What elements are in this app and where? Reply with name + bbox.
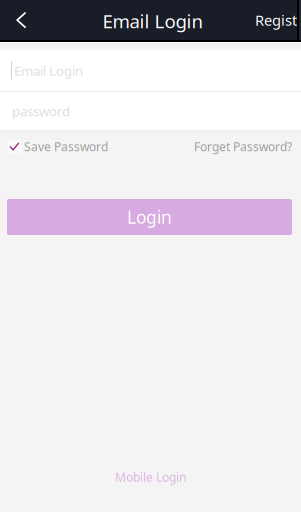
staticText: Email Login — [102, 9, 203, 33]
staticText: Register — [255, 10, 301, 30]
staticText: Email Login — [14, 62, 83, 79]
button[interactable]: Login — [7, 199, 292, 235]
button[interactable]: Email Login — [0, 50, 301, 91]
button[interactable]: Forget Password? — [194, 131, 292, 162]
button[interactable]: Register — [255, 0, 301, 40]
staticText: password — [12, 102, 70, 120]
staticText: Save Password — [24, 138, 108, 154]
staticText: Login — [127, 205, 172, 228]
button[interactable]: password — [0, 92, 301, 130]
staticText: Forget Password? — [194, 138, 292, 154]
staticText: Mobile Login — [115, 469, 186, 485]
button[interactable]: Save Password — [8, 131, 108, 162]
button[interactable]: Back — [0, 0, 60, 40]
button[interactable]: Mobile Login — [107, 461, 194, 493]
